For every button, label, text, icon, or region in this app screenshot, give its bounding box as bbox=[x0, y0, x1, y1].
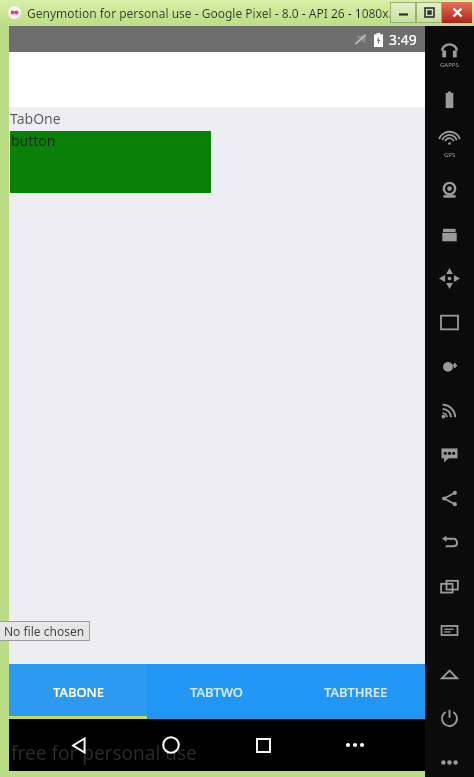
button[interactable]: Emulator control bbox=[425, 256, 474, 300]
button[interactable]: Emulator control bbox=[425, 520, 474, 564]
button[interactable]: Recent apps bbox=[241, 723, 285, 767]
staticText: TABTWO bbox=[190, 683, 244, 701]
button[interactable]: Emulator control bbox=[425, 564, 474, 608]
staticText: free for personal use bbox=[11, 740, 197, 766]
staticText: button bbox=[11, 131, 56, 150]
staticText: Genymotion for personal use - Google Pix… bbox=[27, 5, 399, 21]
button[interactable]: GAPPS bbox=[425, 32, 474, 78]
staticText: TabOne bbox=[10, 109, 61, 128]
staticText: TABONE bbox=[53, 683, 104, 701]
button[interactable]: TABTHREE bbox=[286, 664, 425, 719]
button[interactable]: Close bbox=[442, 2, 472, 23]
button[interactable]: Emulator control bbox=[425, 168, 474, 212]
staticText: No file chosen bbox=[4, 623, 85, 639]
staticText: 3:49 bbox=[389, 30, 417, 49]
button[interactable]: Window control bbox=[416, 2, 442, 23]
button[interactable]: Emulator control bbox=[425, 432, 474, 476]
button[interactable]: Back bbox=[57, 723, 101, 767]
button[interactable]: TABTWO bbox=[147, 664, 286, 719]
button[interactable]: Emulator control bbox=[425, 344, 474, 388]
button[interactable]: Emulator control bbox=[425, 608, 474, 652]
button[interactable]: GPS bbox=[425, 122, 474, 168]
button[interactable]: Emulator control bbox=[425, 212, 474, 256]
staticText: TABTHREE bbox=[324, 683, 388, 701]
button[interactable]: Emulator control bbox=[425, 696, 474, 740]
staticText: GAPPS bbox=[440, 61, 459, 69]
button[interactable]: Emulator control bbox=[425, 476, 474, 520]
button[interactable]: Emulator control bbox=[425, 652, 474, 696]
button[interactable]: More options bbox=[333, 723, 377, 767]
button[interactable]: Window control bbox=[390, 2, 416, 23]
button[interactable]: Emulator control bbox=[425, 388, 474, 432]
button[interactable]: TABONE bbox=[9, 664, 147, 719]
button[interactable]: button bbox=[10, 131, 211, 193]
button[interactable]: Home bbox=[149, 723, 193, 767]
staticText: GPS bbox=[444, 151, 456, 159]
button[interactable]: Emulator control bbox=[425, 300, 474, 344]
button[interactable]: Emulator control bbox=[425, 78, 474, 122]
button[interactable]: Emulator control bbox=[425, 740, 474, 777]
